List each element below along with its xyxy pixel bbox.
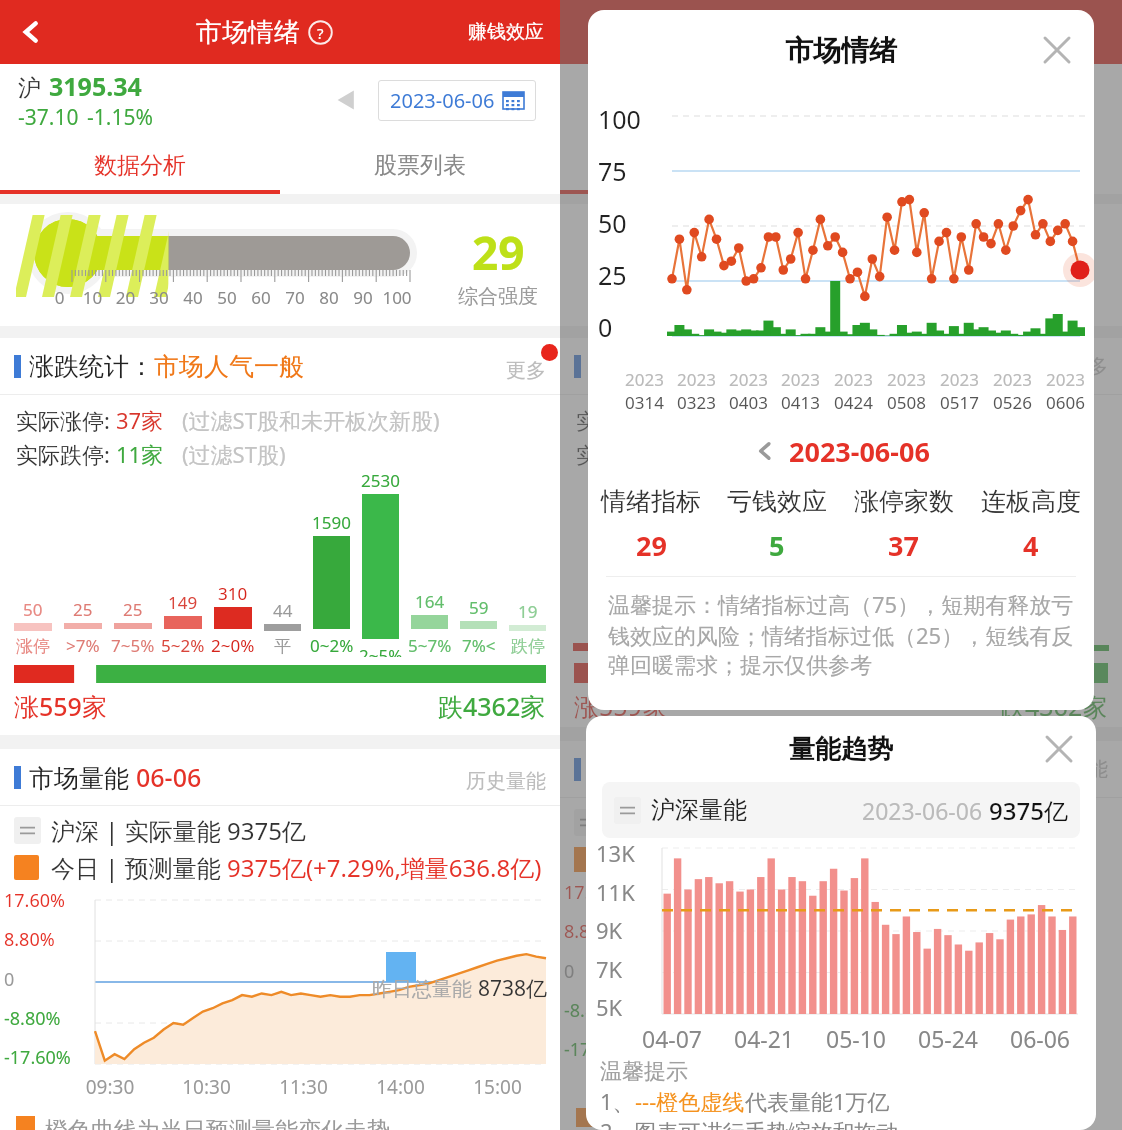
staticText: 连板高度 xyxy=(981,486,1081,517)
staticText: 涨停 xyxy=(16,636,50,657)
staticText: 9375亿 xyxy=(989,794,1068,827)
staticText: 4 xyxy=(1023,527,1039,564)
button[interactable]: 赚钱效应 xyxy=(468,20,560,44)
button[interactable]: 涨跌统计： xyxy=(0,338,560,394)
staticText: >7% xyxy=(66,634,100,657)
staticText: 100 xyxy=(598,102,641,136)
staticText: 涨559家 xyxy=(14,689,107,723)
button[interactable]: 市场量能 xyxy=(0,749,560,805)
staticText: 2023 xyxy=(781,368,820,391)
staticText: 13K xyxy=(596,838,635,868)
staticText: 情绪指标 xyxy=(601,486,701,517)
staticText: 0 xyxy=(564,959,575,984)
staticText: -17.60% xyxy=(564,1037,631,1062)
button[interactable]: 2023-06-06 xyxy=(378,80,536,121)
button[interactable]: 市场情绪 xyxy=(196,16,333,49)
button[interactable]: 涨停家数 xyxy=(840,486,967,564)
staticText: 11:30 xyxy=(255,1074,352,1100)
staticText: 8738亿 xyxy=(478,974,548,1003)
staticText: 30 xyxy=(142,286,176,309)
staticText: 市场情绪 xyxy=(196,16,300,49)
button[interactable]: 连板高度 xyxy=(967,486,1094,564)
staticText: 橙色曲线为当日预测量能变化走势 xyxy=(45,1116,390,1130)
staticText: ? xyxy=(317,23,324,43)
staticText: 沪深量能 xyxy=(651,795,747,825)
staticText: 10 xyxy=(76,286,109,309)
staticText: 涨停家数 xyxy=(854,486,954,517)
button[interactable]: Previous day xyxy=(332,86,360,114)
staticText: -37.10 xyxy=(18,103,79,132)
staticText: 2、图表可进行手势缩放和拖动 xyxy=(600,1116,899,1130)
button[interactable]: Back xyxy=(0,0,62,64)
staticText: 50 xyxy=(210,286,244,309)
button[interactable]: 数据分析 xyxy=(0,136,280,194)
staticText: 市场量能 xyxy=(29,760,136,794)
staticText: -8.80% xyxy=(4,1006,61,1031)
button[interactable]: 2023-06-06 xyxy=(588,420,1094,482)
staticText: 29 xyxy=(636,527,667,564)
staticText: 跌4362家 xyxy=(438,689,546,723)
staticText: 实际跌停: xyxy=(16,439,116,469)
staticText: 25 xyxy=(123,598,143,621)
button[interactable]: Close xyxy=(1034,27,1080,73)
staticText: 历史量能 xyxy=(466,769,546,794)
staticText: 2023-06-06 xyxy=(390,87,495,114)
staticText: 0314 xyxy=(625,391,664,414)
staticText: 1590 xyxy=(312,511,351,534)
staticText: 2~5% xyxy=(359,644,403,657)
staticText: 09:30 xyxy=(62,1074,158,1100)
staticText: 75 xyxy=(598,154,627,188)
button[interactable]: Close xyxy=(1036,726,1082,772)
staticText: 7K xyxy=(596,954,623,984)
staticText: 04-07 xyxy=(626,1023,718,1054)
staticText: 0~2% xyxy=(310,634,354,657)
button[interactable]: 沪深量能 xyxy=(602,782,1080,838)
button[interactable]: 情绪指标 xyxy=(588,486,714,564)
staticText: -1.15% xyxy=(87,103,153,132)
staticText: 昨日总量能 xyxy=(372,975,478,1002)
staticText: 2023 xyxy=(993,368,1032,391)
staticText: 2023 xyxy=(940,368,979,391)
staticText: 06-06 xyxy=(994,1023,1086,1054)
staticText: 0 xyxy=(4,967,15,992)
staticText: 80 xyxy=(312,286,346,309)
button[interactable]: 股票列表 xyxy=(280,136,560,194)
staticText: 实际涨停: xyxy=(16,405,116,435)
staticText: 0606 xyxy=(1046,391,1085,414)
staticText: 更多 xyxy=(1068,354,1108,379)
staticText: 17.60% xyxy=(564,880,625,905)
staticText: 温馨提示 xyxy=(600,1058,688,1086)
staticText: 40 xyxy=(176,286,210,309)
staticText: 市场人气一般 xyxy=(154,351,304,382)
staticText: 149 xyxy=(168,591,198,614)
staticText: 2023 xyxy=(834,368,873,391)
staticText: 50 xyxy=(23,598,43,621)
staticText: 10:30 xyxy=(158,1074,255,1100)
staticText: 3195.34 xyxy=(49,69,142,103)
staticText: 25 xyxy=(73,598,93,621)
staticText: 8.80% xyxy=(564,919,615,944)
staticText: 沪深 | 实际量能 9375亿 xyxy=(51,814,306,847)
staticText: 9K xyxy=(596,915,623,945)
staticText: 涨跌统计： xyxy=(29,351,154,382)
staticText: 60 xyxy=(244,286,278,309)
button[interactable]: 亏钱效应 xyxy=(714,486,840,564)
staticText: 310 xyxy=(218,582,248,605)
staticText: 实际涨停: 37家 xyxy=(576,405,723,435)
button[interactable]: 沪 xyxy=(18,69,153,132)
staticText: 沪深 | 实际量能 9375亿 xyxy=(611,806,866,839)
staticText: 1、 xyxy=(600,1086,635,1116)
staticText: 历史量能 xyxy=(1028,757,1108,782)
staticText: 11K xyxy=(596,877,635,907)
staticText: 37家 xyxy=(116,405,164,435)
staticText: 0526 xyxy=(993,391,1032,414)
staticText: 5~2% xyxy=(161,634,205,657)
staticText: 2023 xyxy=(677,368,716,391)
staticText: 数据分析 xyxy=(94,151,186,180)
staticText: 17.60% xyxy=(4,888,65,913)
staticText: 15:00 xyxy=(449,1074,546,1100)
staticText: 25 xyxy=(598,258,627,292)
staticText: 今日 | 预测量能 9375亿 xyxy=(611,843,866,876)
staticText: 5 xyxy=(769,527,785,564)
staticText: 06-06 xyxy=(136,760,202,794)
